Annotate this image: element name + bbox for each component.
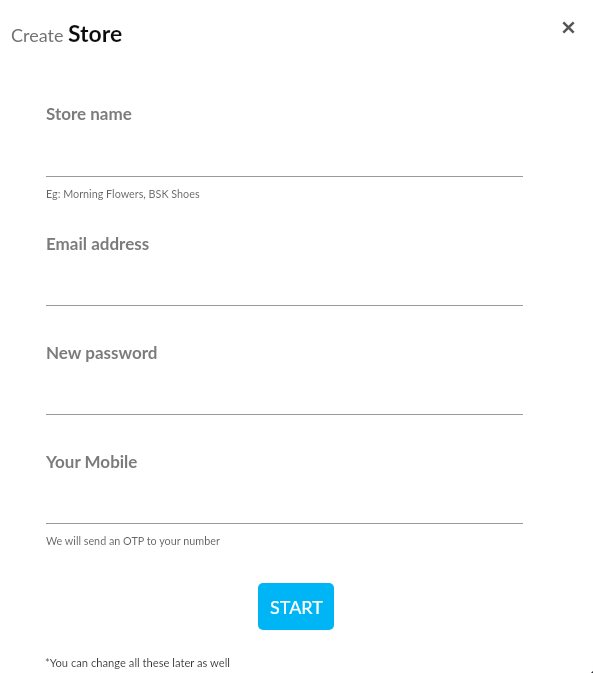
staticText: Email address xyxy=(46,233,150,253)
staticText: *You can change all these later as well xyxy=(45,656,230,669)
staticText: Create Store xyxy=(11,19,123,47)
staticText: Eg: Morning Flowers, BSK Shoes xyxy=(46,187,200,200)
button[interactable]: Close xyxy=(550,9,587,46)
button[interactable]: New password xyxy=(46,338,523,417)
button[interactable]: Help xyxy=(589,669,593,673)
button[interactable]: START xyxy=(258,583,334,630)
button[interactable]: Store name xyxy=(46,99,523,179)
staticText: New password xyxy=(46,342,158,362)
staticText: We will send an OTP to your number xyxy=(46,534,220,547)
staticText: Your Mobile xyxy=(46,451,138,471)
button[interactable]: Email address xyxy=(46,229,523,308)
button[interactable]: Your Mobile xyxy=(46,447,523,526)
staticText: START xyxy=(270,596,323,618)
staticText: Store name xyxy=(46,103,132,123)
